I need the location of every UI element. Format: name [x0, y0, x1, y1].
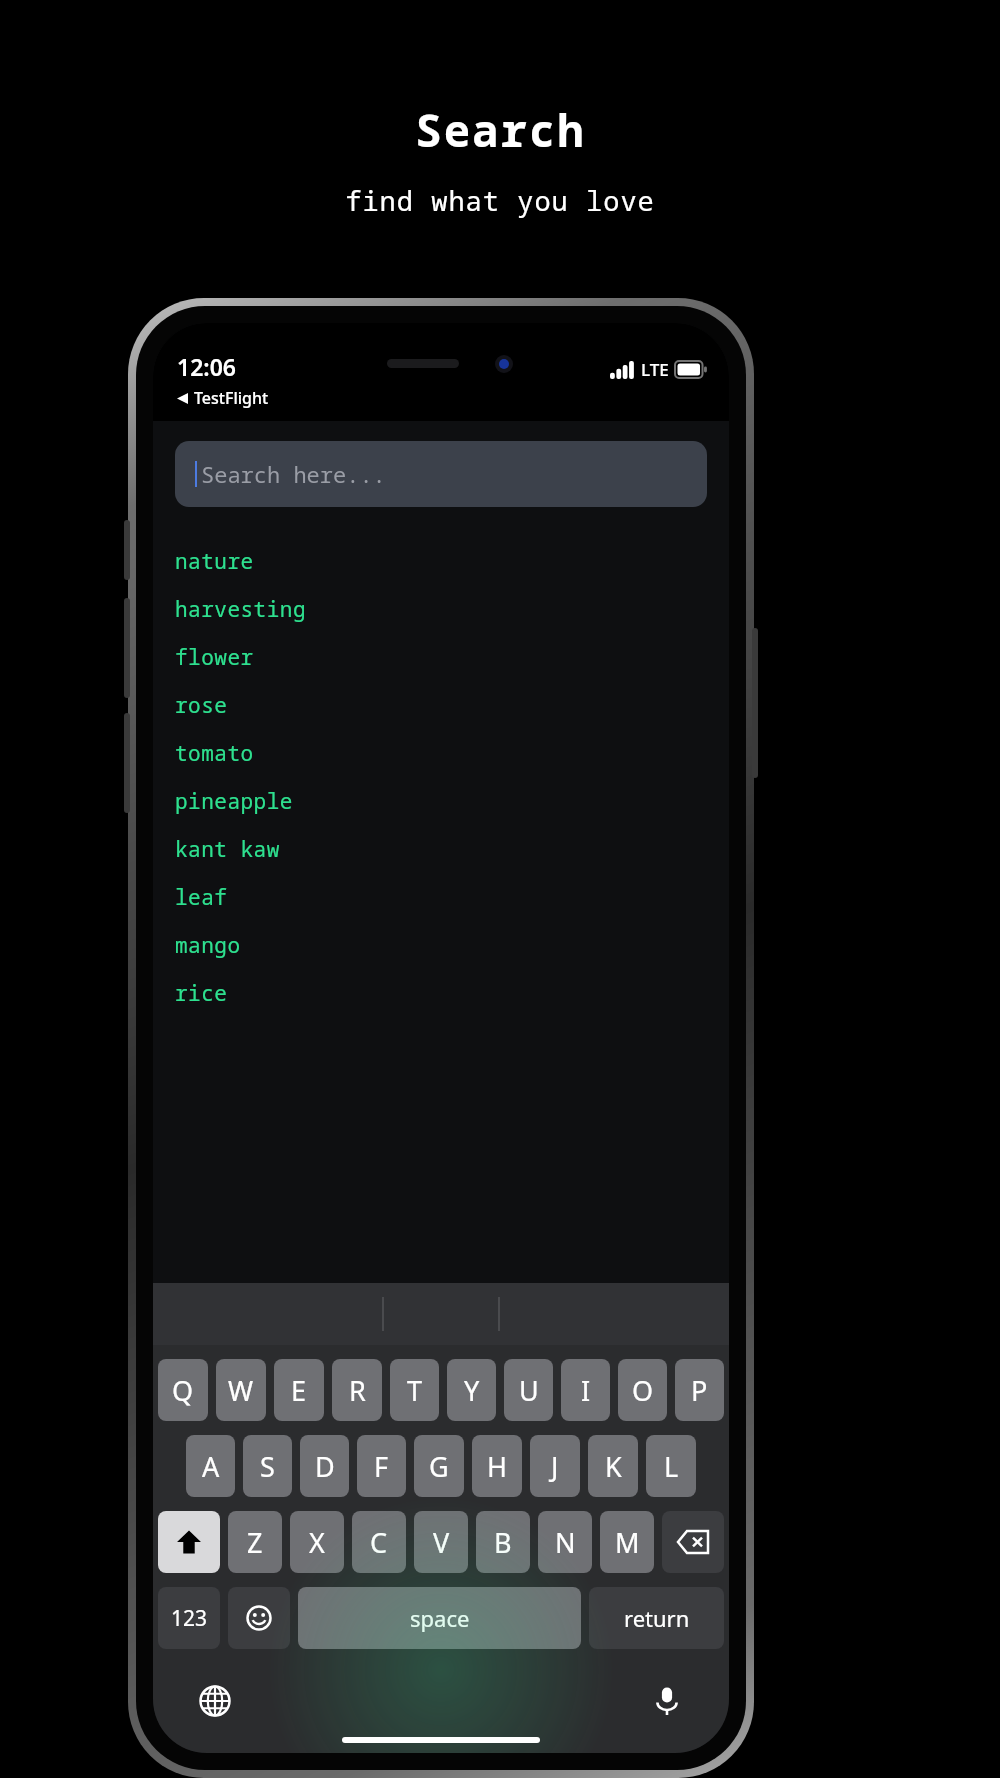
button[interactable]: F: [357, 1435, 406, 1497]
button[interactable]: Z: [228, 1511, 282, 1573]
staticText: S: [260, 1448, 275, 1485]
button[interactable]: B: [476, 1511, 530, 1573]
staticText: tomato: [175, 739, 254, 768]
staticText: D: [315, 1448, 335, 1485]
button[interactable]: nature: [175, 537, 729, 585]
staticText: C: [370, 1524, 388, 1561]
staticText: harvesting: [175, 595, 306, 624]
button[interactable]: W: [216, 1359, 266, 1421]
button[interactable]: L: [646, 1435, 696, 1497]
button[interactable]: S: [243, 1435, 292, 1497]
staticText: Q: [172, 1372, 194, 1409]
staticText: K: [605, 1448, 622, 1485]
staticText: N: [555, 1524, 576, 1561]
button[interactable]: Dictation: [645, 1679, 689, 1723]
button[interactable]: V: [414, 1511, 468, 1573]
button[interactable]: H: [472, 1435, 522, 1497]
button[interactable]: Shift: [158, 1511, 220, 1573]
staticText: rose: [175, 691, 228, 720]
staticText: X: [309, 1524, 325, 1561]
button[interactable]: leaf: [175, 873, 729, 921]
button[interactable]: flower: [175, 633, 729, 681]
button[interactable]: R: [332, 1359, 382, 1421]
button[interactable]: space: [298, 1587, 581, 1649]
button[interactable]: C: [352, 1511, 406, 1573]
button[interactable]: D: [300, 1435, 349, 1497]
button[interactable]: Backspace: [662, 1511, 724, 1573]
staticText: A: [202, 1448, 220, 1485]
staticText: M: [615, 1524, 640, 1561]
button[interactable]: rice: [175, 969, 729, 1017]
button[interactable]: mango: [175, 921, 729, 969]
staticText: T: [407, 1372, 423, 1409]
button[interactable]: T: [390, 1359, 439, 1421]
staticText: R: [349, 1372, 366, 1409]
staticText: P: [691, 1372, 708, 1409]
button[interactable]: J: [530, 1435, 580, 1497]
staticText: V: [433, 1524, 450, 1561]
staticText: LTE: [641, 358, 669, 381]
button[interactable]: Y: [447, 1359, 496, 1421]
staticText: TestFlight: [194, 387, 269, 409]
staticText: W: [228, 1372, 254, 1409]
button[interactable]: O: [618, 1359, 667, 1421]
button[interactable]: 123: [158, 1587, 220, 1649]
button[interactable]: P: [675, 1359, 724, 1421]
staticText: mango: [175, 931, 241, 960]
button[interactable]: E: [274, 1359, 324, 1421]
staticText: O: [632, 1372, 654, 1409]
button[interactable]: N: [538, 1511, 592, 1573]
staticText: 123: [171, 1604, 208, 1633]
staticText: 12:06: [177, 351, 236, 382]
button[interactable]: Emoji: [228, 1587, 290, 1649]
button[interactable]: K: [588, 1435, 638, 1497]
staticText: nature: [175, 547, 254, 576]
staticText: kant kaw: [175, 835, 280, 864]
staticText: B: [494, 1524, 512, 1561]
staticText: U: [519, 1372, 539, 1409]
staticText: flower: [175, 643, 254, 672]
staticText: return: [624, 1603, 690, 1633]
button[interactable]: M: [600, 1511, 654, 1573]
staticText: G: [429, 1448, 449, 1485]
staticText: Search here...: [201, 459, 386, 489]
staticText: leaf: [175, 883, 228, 912]
button[interactable]: Change keyboard: [193, 1679, 237, 1723]
button[interactable]: tomato: [175, 729, 729, 777]
staticText: space: [410, 1603, 470, 1633]
button[interactable]: Q: [158, 1359, 208, 1421]
button[interactable]: G: [414, 1435, 464, 1497]
staticText: E: [291, 1372, 307, 1409]
staticText: Z: [247, 1524, 263, 1561]
staticText: pineapple: [175, 787, 293, 816]
staticText: F: [374, 1448, 389, 1485]
button[interactable]: U: [504, 1359, 553, 1421]
button[interactable]: pineapple: [175, 777, 729, 825]
button[interactable]: harvesting: [175, 585, 729, 633]
button[interactable]: rose: [175, 681, 729, 729]
staticText: Search: [415, 100, 586, 160]
button[interactable]: kant kaw: [175, 825, 729, 873]
button[interactable]: I: [561, 1359, 610, 1421]
staticText: L: [664, 1448, 679, 1485]
staticText: I: [581, 1372, 591, 1409]
staticText: rice: [175, 979, 228, 1008]
staticText: H: [487, 1448, 508, 1485]
button[interactable]: X: [290, 1511, 344, 1573]
staticText: Y: [464, 1372, 480, 1409]
staticText: J: [551, 1448, 559, 1485]
button[interactable]: A: [186, 1435, 235, 1497]
button[interactable]: return: [589, 1587, 724, 1649]
staticText: find what you love: [345, 182, 655, 219]
button[interactable]: Search here...: [175, 441, 707, 507]
